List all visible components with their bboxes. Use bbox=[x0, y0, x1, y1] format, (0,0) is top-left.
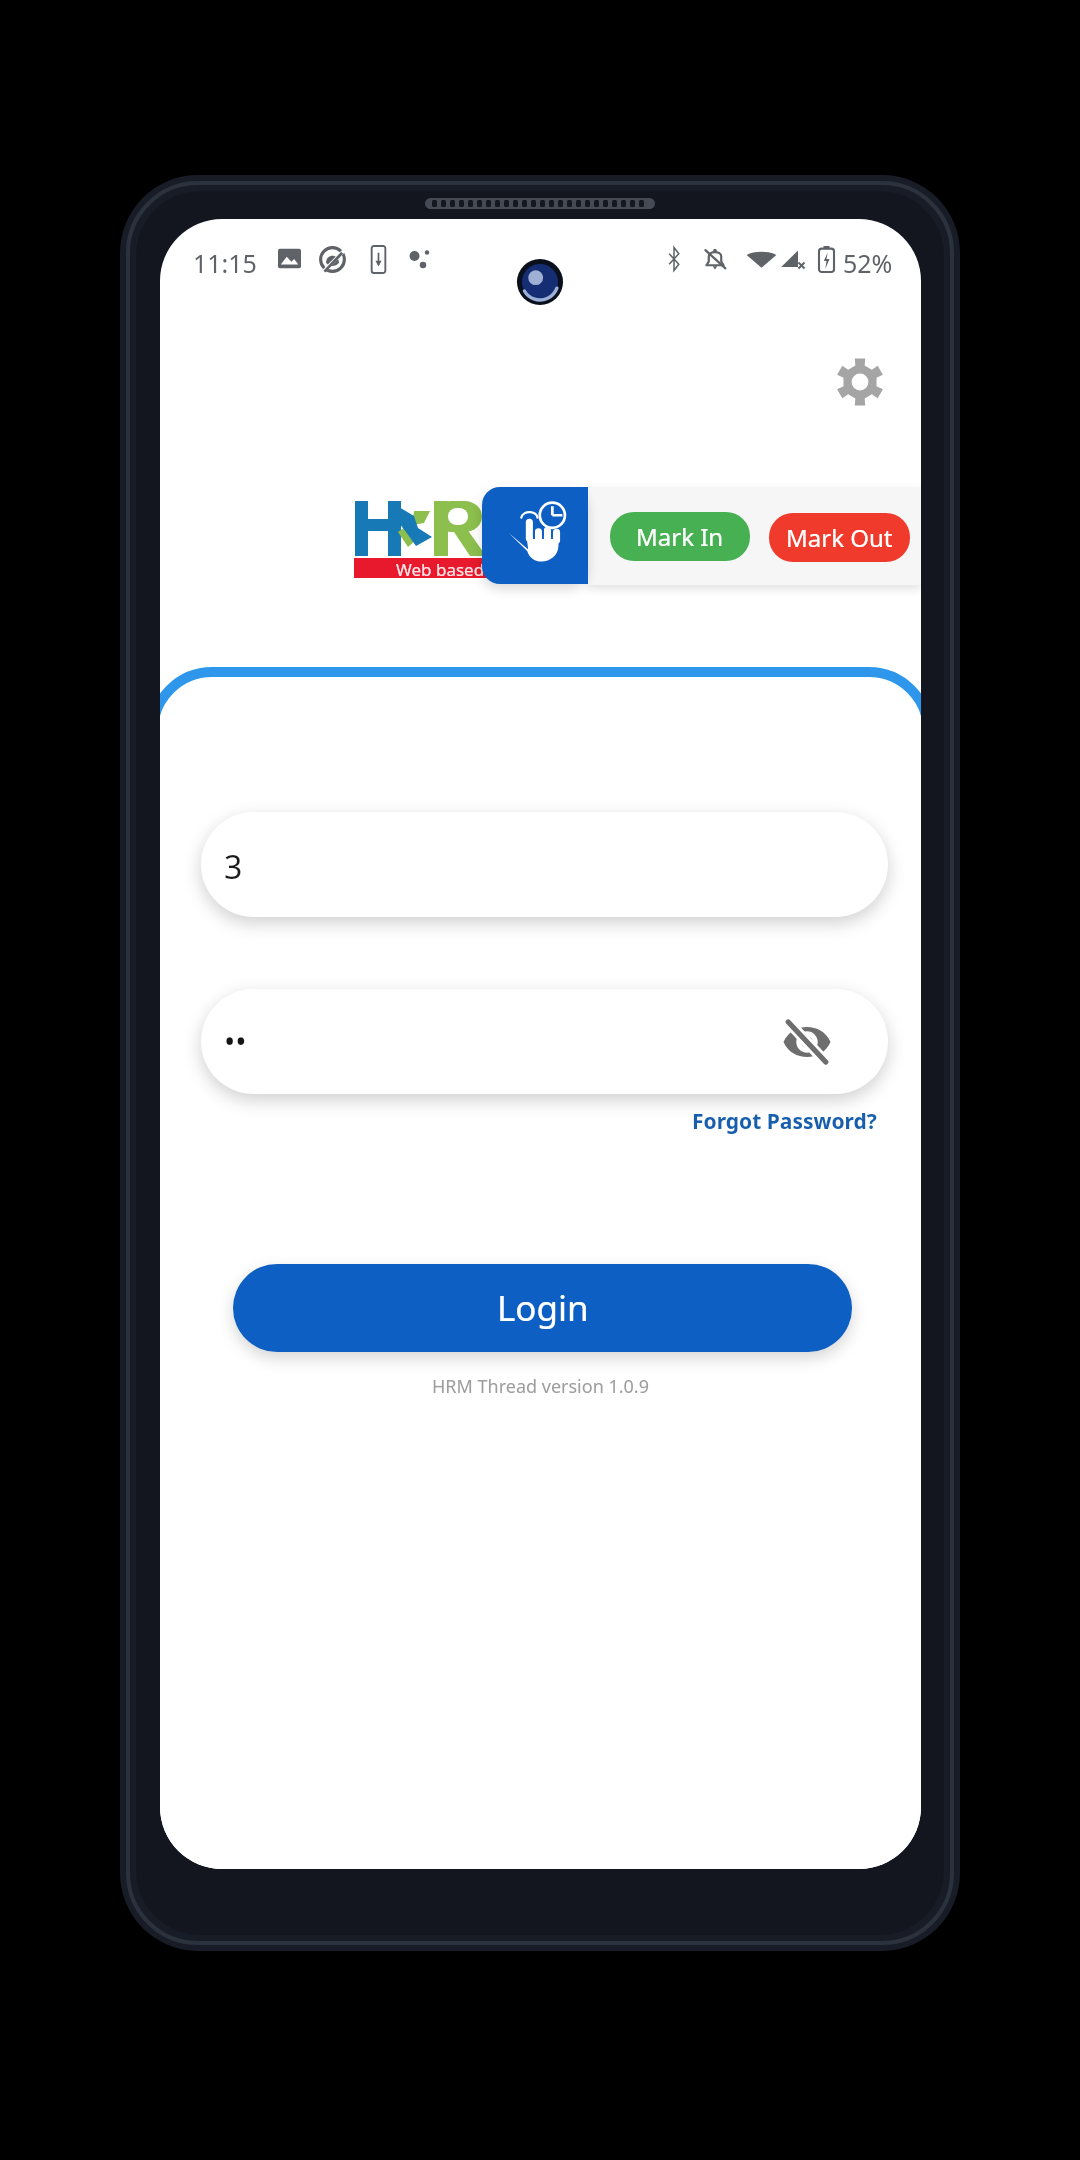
staticText: Login bbox=[497, 1284, 589, 1332]
button[interactable]: Toggle password visibility bbox=[779, 1014, 835, 1070]
staticText: 11:15 bbox=[193, 246, 257, 280]
button[interactable]: Mark In bbox=[610, 512, 750, 561]
button[interactable]: Attendance bbox=[482, 487, 588, 584]
staticText: HRM Thread version 1.0.9 bbox=[432, 1374, 649, 1399]
staticText: Mark Out bbox=[786, 521, 893, 554]
button[interactable]: •• bbox=[201, 989, 888, 1094]
staticText: Mark In bbox=[636, 520, 724, 553]
staticText: •• bbox=[224, 1021, 247, 1062]
staticText: Forgot Password? bbox=[692, 1107, 877, 1136]
button[interactable]: Mark Out bbox=[769, 513, 910, 562]
staticText: 3 bbox=[224, 845, 243, 889]
button[interactable]: Forgot Password? bbox=[692, 1107, 877, 1136]
staticText: Web based bbox=[396, 558, 485, 581]
button[interactable]: 3 bbox=[201, 812, 888, 917]
button[interactable]: Settings bbox=[830, 352, 890, 412]
staticText: 52% bbox=[843, 246, 893, 280]
button[interactable]: Login bbox=[233, 1264, 852, 1352]
